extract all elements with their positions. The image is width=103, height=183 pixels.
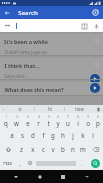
staticText: Saya pikir... (4, 73, 28, 79)
staticText: t (47, 119, 50, 127)
staticText: 9 (87, 115, 89, 119)
button[interactable]: 7 (63, 113, 73, 128)
staticText: 8 (77, 115, 79, 119)
staticText: It's been a while (4, 38, 48, 45)
staticText: h (61, 131, 65, 139)
staticText: m (80, 145, 86, 153)
button[interactable]: v (48, 142, 58, 156)
button[interactable]: Play (90, 83, 100, 93)
button[interactable]: Recents (56, 170, 70, 183)
button[interactable]: h (58, 128, 68, 142)
button[interactable]: , (15, 156, 25, 170)
button[interactable]: s (17, 128, 28, 142)
button[interactable]: how (65, 105, 94, 113)
button[interactable]: Emoji (25, 156, 35, 170)
button[interactable]: Play (90, 74, 100, 84)
button[interactable]: 8 (73, 113, 83, 128)
button[interactable]: is (6, 105, 34, 113)
button[interactable]: Language (0, 19, 103, 32)
button[interactable]: Translate (79, 21, 89, 31)
button[interactable]: 4 (33, 113, 43, 128)
button[interactable]: Home (33, 170, 47, 183)
button[interactable]: Voice input (94, 105, 103, 113)
button[interactable]: I think that... (0, 58, 103, 80)
button[interactable]: 3 (22, 113, 33, 128)
staticText: 2 (16, 115, 18, 119)
staticText: , (19, 160, 21, 167)
button[interactable]: x (27, 142, 38, 156)
staticText: y (56, 119, 60, 127)
staticText: b (61, 145, 65, 153)
staticText: g (51, 131, 55, 139)
staticText: n (71, 145, 75, 153)
staticText: ?123 (3, 161, 12, 166)
staticText: v (51, 145, 55, 153)
button[interactable]: m (78, 142, 88, 156)
button[interactable]: d (28, 128, 38, 142)
staticText: . (81, 160, 83, 167)
button[interactable]: hi (35, 105, 64, 113)
staticText: I think that... (4, 62, 40, 69)
button[interactable]: 9 (83, 113, 93, 128)
button[interactable]: Voice input (91, 21, 101, 31)
button[interactable]: Back (0, 6, 13, 19)
button[interactable]: g (48, 128, 58, 142)
staticText: 0 (97, 115, 99, 119)
button[interactable]: It's been a while (0, 34, 103, 56)
button[interactable]: k (78, 128, 88, 142)
button[interactable]: c (38, 142, 48, 156)
staticText: 6 (57, 115, 59, 119)
button[interactable]: Settings (89, 6, 102, 19)
button[interactable]: j (68, 128, 78, 142)
button[interactable]: 0 (93, 113, 103, 128)
staticText: 1 (5, 115, 7, 119)
button[interactable]: Search (87, 156, 103, 170)
button[interactable]: b (58, 142, 68, 156)
staticText: f (42, 131, 45, 139)
staticText: o (86, 119, 90, 127)
staticText: hi (48, 106, 52, 112)
button[interactable]: n (68, 142, 78, 156)
staticText: 7 (67, 115, 69, 119)
button[interactable]: . (77, 156, 87, 170)
staticText: x (31, 145, 35, 153)
staticText: l (92, 131, 94, 139)
button[interactable]: Shift (0, 142, 16, 156)
button[interactable]: More suggestions (0, 105, 6, 113)
staticText: d (31, 131, 35, 139)
button[interactable]: Language (3, 21, 12, 30)
staticText: q (4, 119, 8, 127)
button[interactable]: Back (9, 170, 23, 183)
button[interactable]: Favorite (92, 36, 100, 44)
staticText: 3 (27, 115, 29, 119)
staticText: a (10, 131, 14, 139)
staticText: r (37, 119, 40, 127)
staticText: What does this mean? (4, 86, 64, 93)
button[interactable]: Backspace (88, 142, 103, 156)
button[interactable]: 1 (0, 113, 11, 128)
button[interactable]: 6 (53, 113, 63, 128)
button[interactable]: 2 (11, 113, 22, 128)
staticText: w (14, 119, 19, 127)
staticText: Sudah lama juga ya (4, 49, 47, 55)
button[interactable]: f (38, 128, 48, 142)
staticText: is (18, 106, 22, 112)
button[interactable]: Hide keyboard (80, 170, 94, 183)
button[interactable]: l (88, 128, 98, 142)
button[interactable]: z (16, 142, 27, 156)
button[interactable]: ?123 (0, 156, 15, 170)
staticText: how (75, 106, 84, 112)
staticText: u (66, 119, 70, 127)
staticText: p (96, 119, 100, 127)
button[interactable]: What does this mean? (0, 82, 103, 96)
staticText: e (26, 119, 30, 127)
staticText: s (21, 131, 24, 139)
button[interactable]: a (6, 128, 17, 142)
button[interactable]: 5 (43, 113, 53, 128)
staticText: 5 (48, 115, 50, 119)
staticText: i (77, 119, 79, 127)
staticText: k (81, 131, 85, 139)
staticText: z (20, 145, 23, 153)
button[interactable]: Favorite (92, 60, 100, 68)
